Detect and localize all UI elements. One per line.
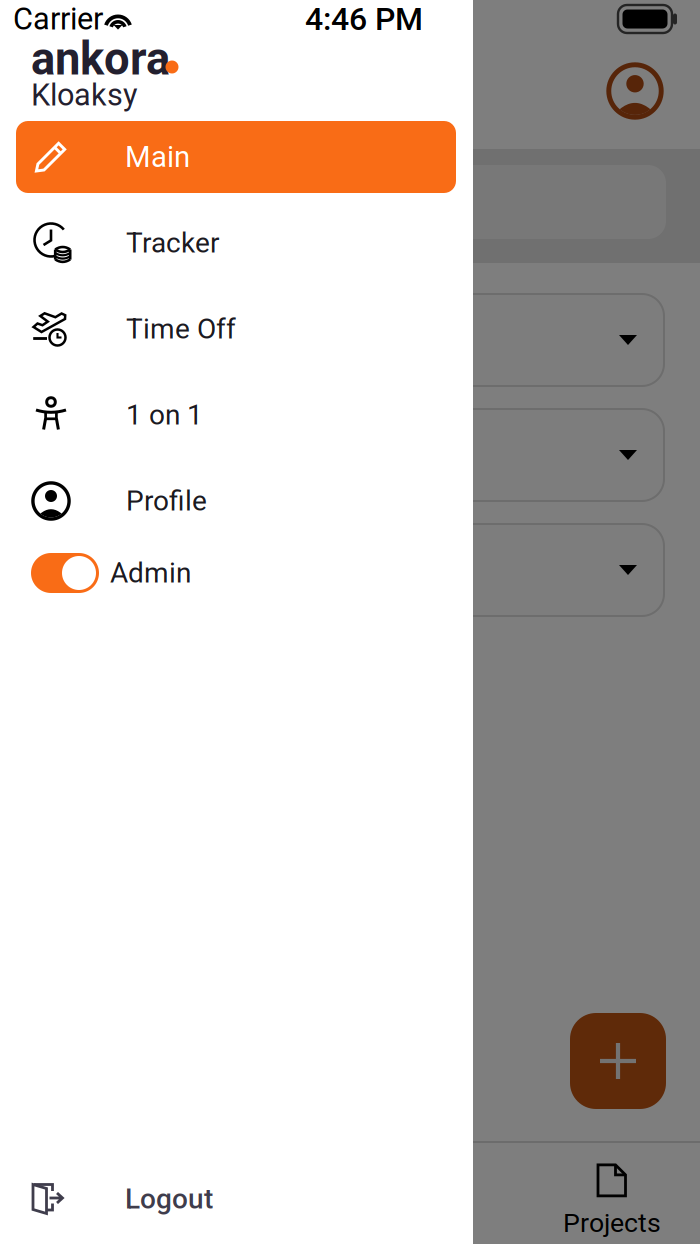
staticText: 4:46 PM <box>305 0 423 38</box>
staticText: Time Off <box>126 313 236 345</box>
staticText: Projects <box>563 1207 661 1239</box>
staticText: Tracker <box>126 227 219 259</box>
staticText: 1 on 1 <box>126 399 203 431</box>
button[interactable]: Admin <box>0 536 473 610</box>
button[interactable]: Add <box>570 1013 666 1109</box>
staticText: Main <box>125 140 190 174</box>
button[interactable]: Account <box>606 62 664 120</box>
button[interactable]: Main <box>16 121 456 193</box>
staticText: Kloaksy <box>31 77 138 113</box>
button[interactable]: Profile <box>0 458 473 544</box>
staticText: ankora <box>31 32 170 85</box>
button[interactable]: 1 on 1 <box>0 372 473 458</box>
staticText: Profile <box>126 485 207 517</box>
button[interactable]: Tracker <box>0 200 473 286</box>
button[interactable]: Time Off <box>0 286 473 372</box>
button[interactable]: Projects <box>522 1152 700 1244</box>
staticText: Logout <box>125 1183 213 1215</box>
staticText: Admin <box>110 557 191 589</box>
button[interactable]: Logout <box>0 1156 473 1242</box>
staticText: Carrier <box>13 1 103 37</box>
